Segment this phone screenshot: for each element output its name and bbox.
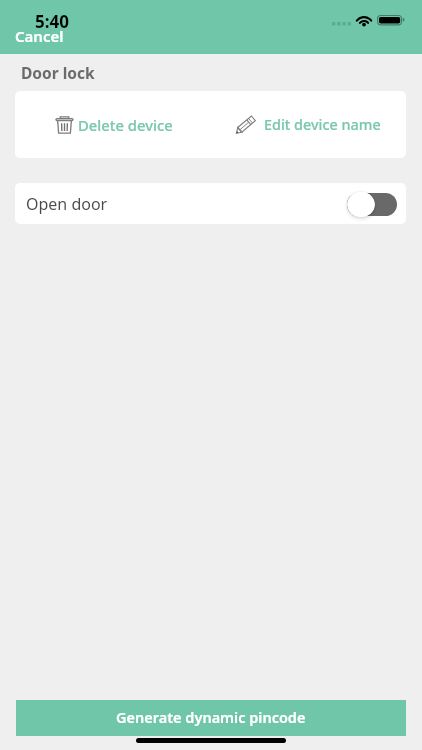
button[interactable]: Open door [15,183,406,224]
staticText: Delete device [78,115,173,135]
button[interactable]: Delete device [15,91,210,158]
button[interactable]: Edit device name [210,91,406,158]
staticText: Open door [26,193,108,215]
staticText: 5:40 [35,10,69,33]
button[interactable]: Generate dynamic pincode [16,700,406,736]
button[interactable]: Cancel [15,26,64,46]
button[interactable]: Open door toggle [347,191,397,217]
staticText: Edit device name [264,115,381,135]
staticText: Generate dynamic pincode [116,707,306,727]
staticText: Cancel [15,26,64,46]
staticText: Door lock [21,62,95,83]
